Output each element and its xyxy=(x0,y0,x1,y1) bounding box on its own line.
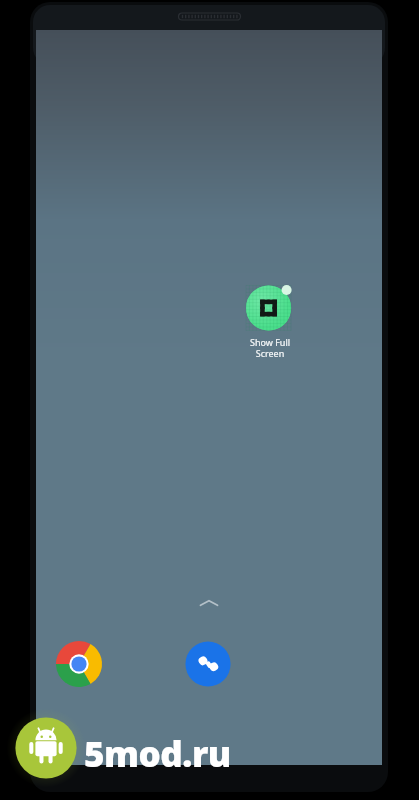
button[interactable]: Phone xyxy=(184,640,232,688)
staticText: Show Full Screen xyxy=(232,336,308,359)
button[interactable]: Chrome xyxy=(55,640,103,688)
staticText: 5mod.ru xyxy=(84,730,231,778)
button[interactable]: Show Full Screen xyxy=(232,284,308,359)
button[interactable]: Open app drawer xyxy=(192,592,226,614)
